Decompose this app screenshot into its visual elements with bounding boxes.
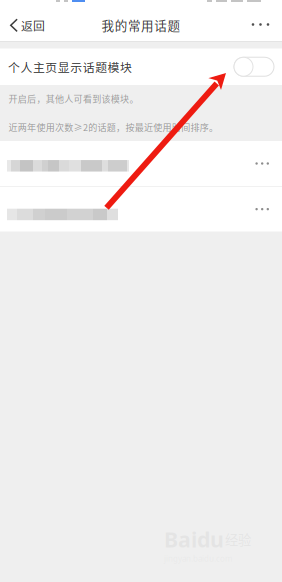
button[interactable]: 返回 <box>0 6 53 45</box>
staticText: 经验 <box>225 529 251 549</box>
staticText: 开启后，其他人可看到该模块。 <box>8 92 138 105</box>
button[interactable]: 个人主页显示话题模块 <box>0 48 282 85</box>
button[interactable]: More options <box>241 6 282 45</box>
button[interactable] <box>0 141 282 186</box>
button[interactable] <box>0 187 282 231</box>
staticText: 个人主页显示话题模块 <box>8 58 132 75</box>
staticText: Baidu <box>164 525 224 553</box>
staticText: 返回 <box>21 17 45 34</box>
staticText: 近两年使用次数≥2的话题，按最近使用时间排序。 <box>8 120 218 133</box>
staticText: 我的常用话题 <box>102 16 180 34</box>
